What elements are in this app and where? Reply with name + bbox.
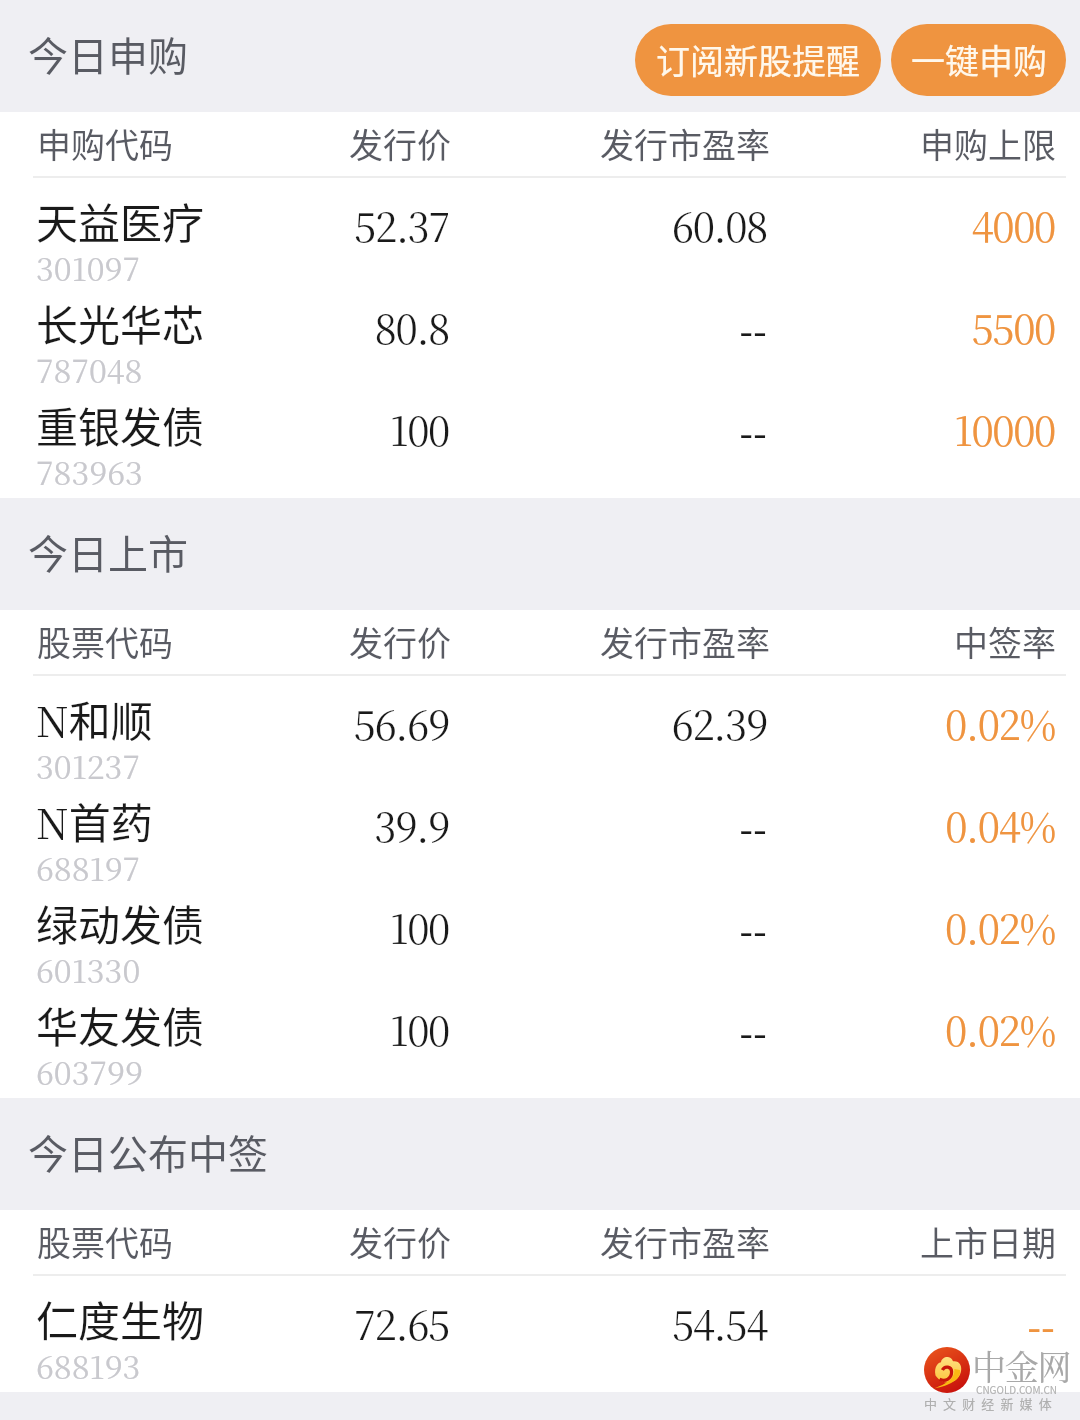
staticText: 仁度生物 bbox=[36, 1288, 205, 1349]
staticText: 39.9 bbox=[0, 796, 449, 853]
staticText: -- bbox=[0, 900, 767, 958]
staticText: 发行价 bbox=[0, 1217, 451, 1266]
staticText: 发行市盈率 bbox=[0, 119, 770, 168]
button[interactable]: 仁度生物 bbox=[0, 1280, 1080, 1382]
staticText: 0.04% bbox=[0, 796, 1055, 853]
staticText: 发行价 bbox=[0, 119, 451, 168]
staticText: 中金网 bbox=[972, 1341, 1071, 1390]
staticText: 688197 bbox=[36, 844, 141, 890]
button[interactable]: N和顺 bbox=[0, 680, 1080, 782]
staticText: 5500 bbox=[0, 298, 1055, 355]
staticText: 今日申购 bbox=[28, 25, 188, 83]
staticText: 72.65 bbox=[0, 1294, 449, 1351]
staticText: 长光华芯 bbox=[36, 292, 205, 353]
staticText: 60.08 bbox=[0, 196, 767, 253]
staticText: 订阅新股提醒 bbox=[656, 35, 860, 84]
other: 中金网 CNGOLD watermark bbox=[0, 0, 1080, 1420]
staticText: 股票代码 bbox=[37, 1217, 173, 1266]
staticText: 重银发债 bbox=[36, 394, 205, 455]
staticText: 787048 bbox=[36, 346, 143, 392]
staticText: 天益医疗 bbox=[36, 190, 205, 251]
button[interactable]: 华友发债 bbox=[0, 986, 1080, 1088]
staticText: 申购上限 bbox=[0, 119, 1056, 168]
staticText: 上市日期 bbox=[0, 1217, 1056, 1266]
staticText: 中 文 财 经 新 媒 体 bbox=[924, 1394, 1080, 1413]
button[interactable]: 今日上市 bbox=[0, 498, 1080, 610]
staticText: 52.37 bbox=[0, 196, 449, 253]
staticText: 688193 bbox=[36, 1342, 141, 1388]
button[interactable]: 重银发债 bbox=[0, 386, 1080, 488]
button[interactable]: 长光华芯 bbox=[0, 284, 1080, 386]
staticText: 100 bbox=[0, 898, 449, 955]
button[interactable]: 今日申购 bbox=[0, 0, 1080, 112]
staticText: 0.02% bbox=[0, 1000, 1055, 1057]
button[interactable]: 一键申购 bbox=[891, 24, 1066, 96]
button[interactable]: 绿动发债 bbox=[0, 884, 1080, 986]
staticText: 783963 bbox=[36, 448, 143, 494]
staticText: 603799 bbox=[36, 1048, 144, 1094]
staticText: 100 bbox=[0, 400, 449, 457]
staticText: 股票代码 bbox=[37, 617, 173, 666]
staticText: 56.69 bbox=[0, 694, 449, 751]
staticText: 80.8 bbox=[0, 298, 449, 355]
staticText: 54.54 bbox=[0, 1294, 767, 1351]
staticText: -- bbox=[0, 300, 767, 358]
staticText: N和顺 bbox=[36, 688, 153, 749]
button[interactable]: 订阅新股提醒 bbox=[635, 24, 881, 96]
staticText: 10000 bbox=[0, 400, 1055, 457]
staticText: -- bbox=[0, 1002, 767, 1060]
staticText: 华友发债 bbox=[36, 994, 205, 1055]
button[interactable]: N首药 bbox=[0, 782, 1080, 884]
staticText: CNGOLD.COM.CN bbox=[976, 1382, 1057, 1396]
button[interactable]: 天益医疗 bbox=[0, 182, 1080, 284]
staticText: 发行市盈率 bbox=[0, 1217, 770, 1266]
staticText: 发行价 bbox=[0, 617, 451, 666]
staticText: -- bbox=[0, 798, 767, 856]
button[interactable]: 今日公布中签 bbox=[0, 1098, 1080, 1210]
staticText: 中签率 bbox=[0, 617, 1056, 666]
staticText: -- bbox=[0, 1296, 1055, 1354]
staticText: N首药 bbox=[36, 790, 153, 851]
staticText: -- bbox=[0, 402, 767, 460]
staticText: 今日公布中签 bbox=[28, 1123, 268, 1181]
staticText: 100 bbox=[0, 1000, 449, 1057]
staticText: 301097 bbox=[36, 244, 141, 290]
staticText: 4000 bbox=[0, 196, 1055, 253]
staticText: 62.39 bbox=[0, 694, 767, 751]
staticText: 今日上市 bbox=[28, 523, 188, 581]
staticText: 601330 bbox=[36, 946, 141, 992]
staticText: 发行市盈率 bbox=[0, 617, 770, 666]
staticText: 0.02% bbox=[0, 694, 1055, 751]
staticText: 0.02% bbox=[0, 898, 1055, 955]
staticText: 301237 bbox=[36, 742, 140, 788]
staticText: 绿动发债 bbox=[36, 892, 205, 953]
staticText: 一键申购 bbox=[911, 35, 1047, 84]
staticText: 申购代码 bbox=[37, 119, 173, 168]
